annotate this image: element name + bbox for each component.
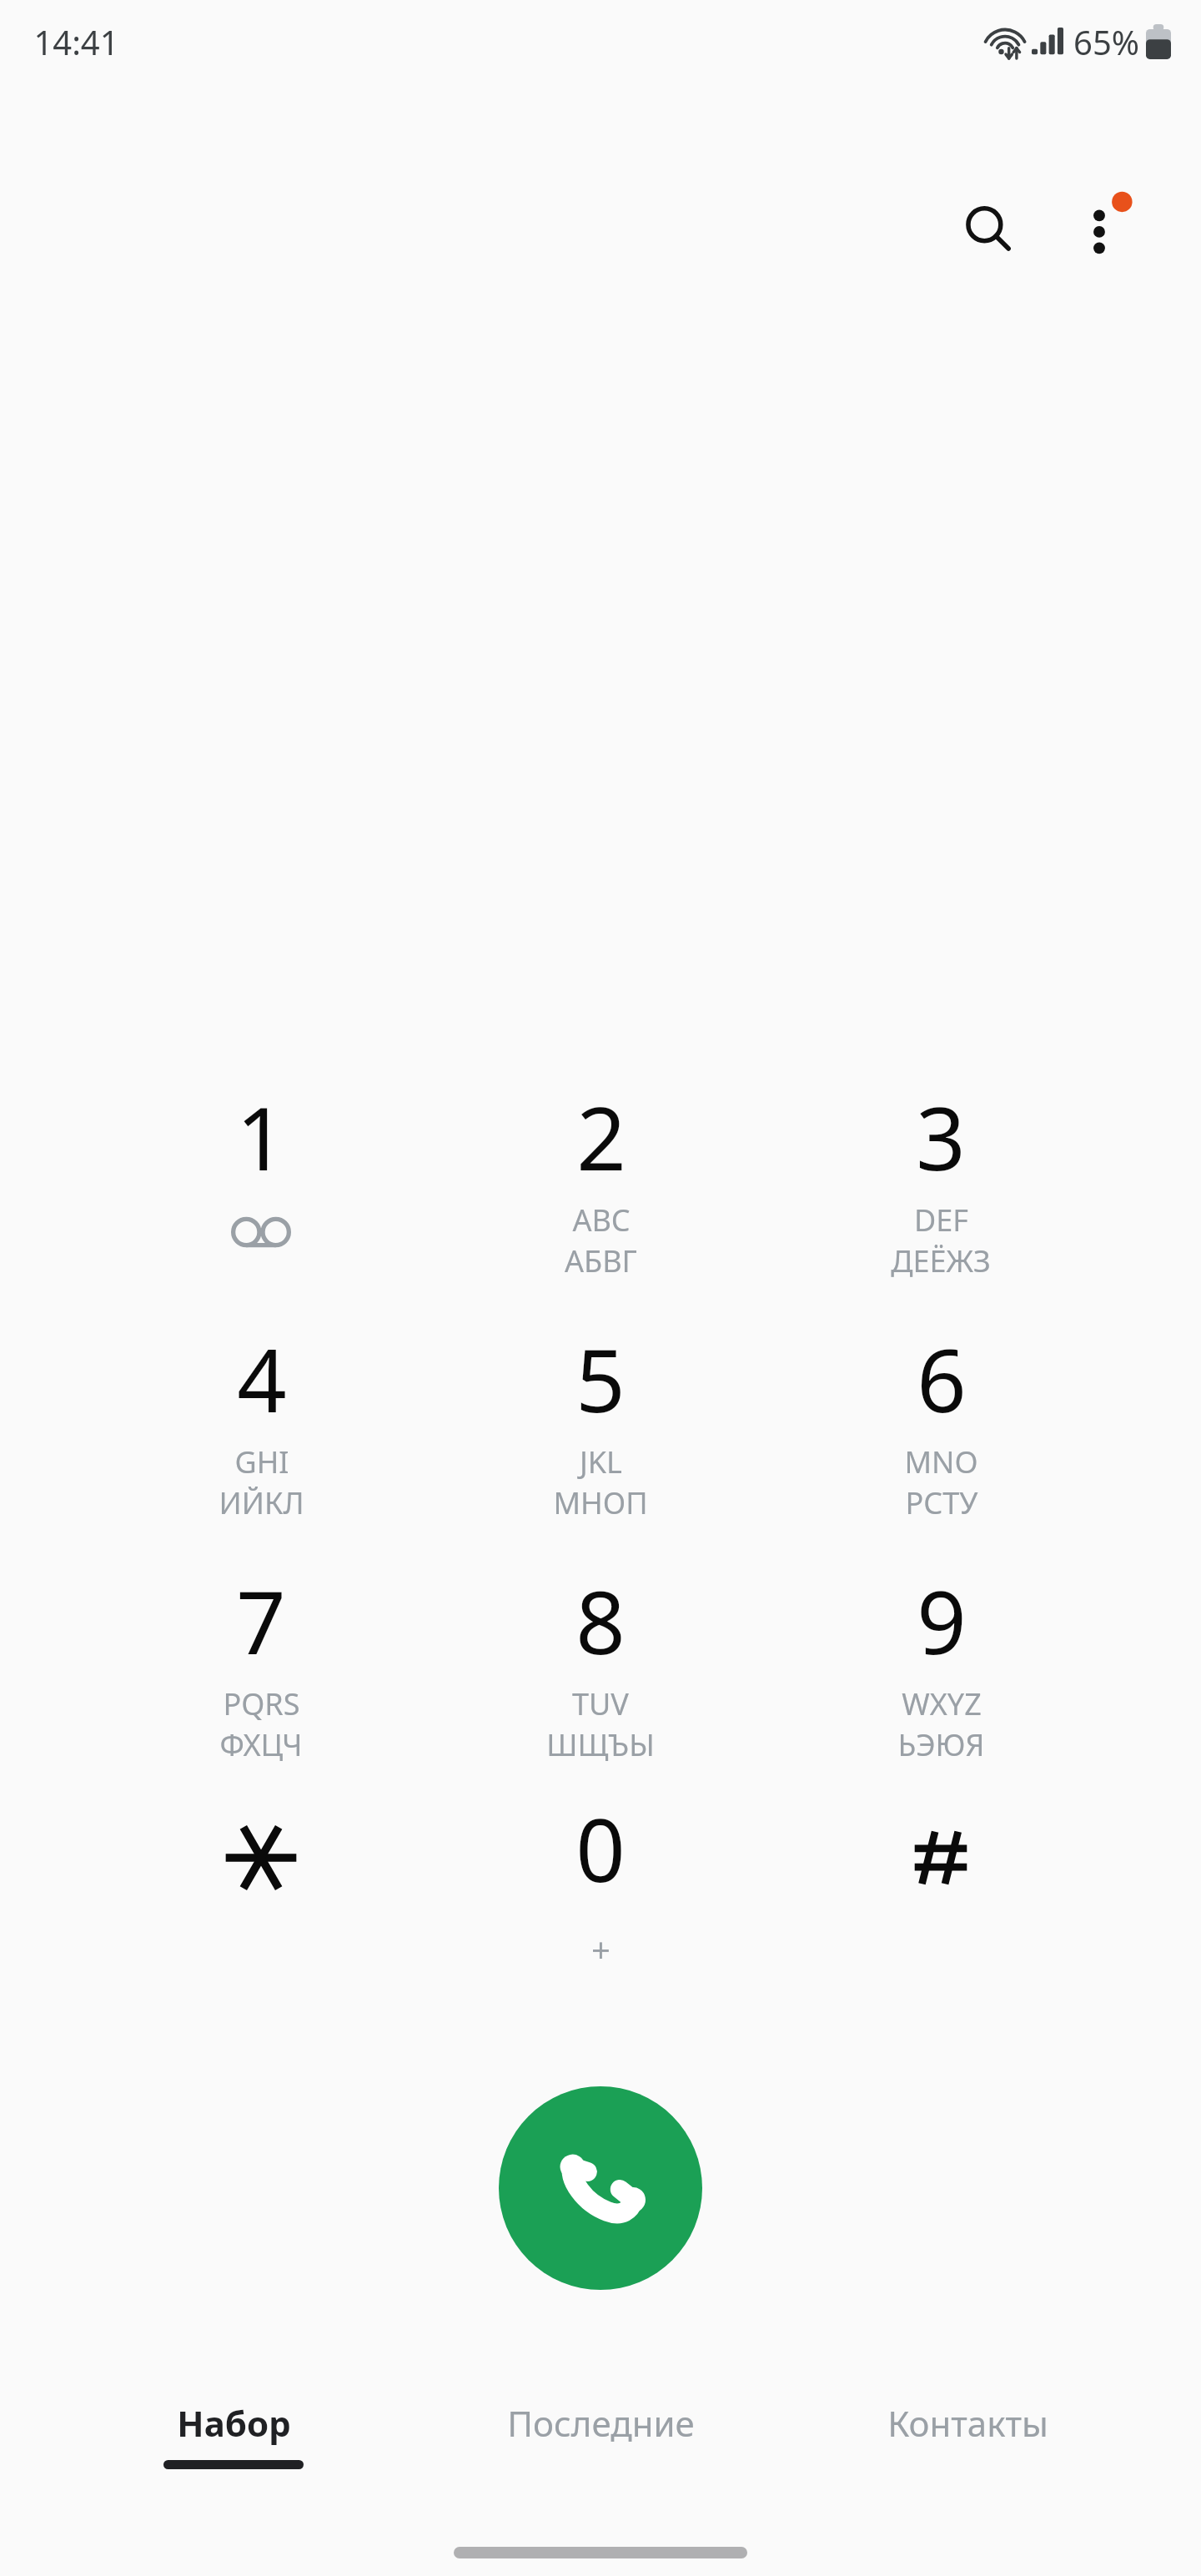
- button[interactable]: 4: [119, 1320, 403, 1553]
- staticText: 5: [575, 1320, 626, 1438]
- staticText: WXYZ: [902, 1683, 982, 1724]
- staticText: +: [591, 1926, 611, 1971]
- button[interactable]: 3: [799, 1078, 1083, 1311]
- staticText: ДЕЁЖЗ: [891, 1240, 991, 1281]
- button[interactable]: 1: [119, 1078, 403, 1311]
- button[interactable]: Контакты: [792, 2399, 1143, 2524]
- staticText: 7: [236, 1562, 286, 1680]
- staticText: АБВГ: [565, 1240, 637, 1281]
- staticText: ЬЭЮЯ: [897, 1724, 985, 1765]
- staticText: РСТУ: [905, 1482, 978, 1523]
- staticText: Последние: [507, 2399, 695, 2447]
- button[interactable]: Последние: [425, 2399, 776, 2524]
- staticText: ИЙКЛ: [219, 1482, 304, 1523]
- staticText: 8: [575, 1562, 626, 1680]
- button[interactable]: 2: [459, 1078, 742, 1311]
- button[interactable]: [119, 1789, 403, 2023]
- staticText: 9: [917, 1562, 967, 1680]
- staticText: Набор: [177, 2399, 291, 2447]
- staticText: 6: [917, 1320, 967, 1438]
- staticText: 0: [575, 1789, 626, 1908]
- button[interactable]: [799, 1789, 1083, 2023]
- staticText: 4: [237, 1320, 287, 1438]
- staticText: 14:41: [33, 19, 119, 64]
- staticText: ФХЦЧ: [219, 1724, 303, 1765]
- staticText: MNO: [904, 1441, 978, 1482]
- staticText: ШЩЪЫ: [546, 1724, 655, 1765]
- staticText: JKL: [580, 1441, 622, 1482]
- staticText: 3: [916, 1078, 966, 1196]
- staticText: PQRS: [223, 1683, 300, 1724]
- button[interactable]: 8: [459, 1562, 742, 1795]
- staticText: МНОП: [553, 1482, 648, 1523]
- staticText: ABC: [572, 1200, 631, 1240]
- button[interactable]: 5: [459, 1320, 742, 1553]
- staticText: 65%: [1073, 19, 1139, 64]
- staticText: TUV: [572, 1683, 629, 1724]
- button[interactable]: Call: [499, 2086, 702, 2290]
- button[interactable]: More options: [1039, 169, 1159, 289]
- button[interactable]: Search: [928, 169, 1048, 289]
- staticText: GHI: [234, 1441, 289, 1482]
- button[interactable]: 9: [799, 1562, 1083, 1795]
- staticText: DEF: [914, 1200, 968, 1240]
- staticText: 2: [576, 1078, 626, 1196]
- button[interactable]: 0: [459, 1789, 742, 2023]
- staticText: Контакты: [887, 2399, 1048, 2447]
- button[interactable]: 6: [799, 1320, 1083, 1553]
- button[interactable]: 7: [119, 1562, 403, 1795]
- button[interactable]: Набор: [58, 2399, 409, 2524]
- staticText: 1: [236, 1078, 286, 1196]
